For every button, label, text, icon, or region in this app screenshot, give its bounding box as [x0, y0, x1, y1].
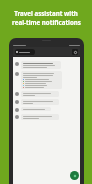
button[interactable]: Search	[15, 49, 35, 55]
staticText: real-time notifications	[12, 18, 81, 26]
button[interactable]	[15, 61, 77, 69]
button[interactable]: Menu	[72, 49, 78, 55]
button[interactable]: Send message	[70, 171, 79, 180]
button[interactable]	[15, 71, 77, 89]
button[interactable]	[15, 114, 77, 120]
button[interactable]	[15, 91, 77, 97]
button[interactable]	[15, 107, 77, 112]
staticText: Travel assistant with	[14, 9, 78, 17]
button[interactable]	[15, 99, 77, 105]
